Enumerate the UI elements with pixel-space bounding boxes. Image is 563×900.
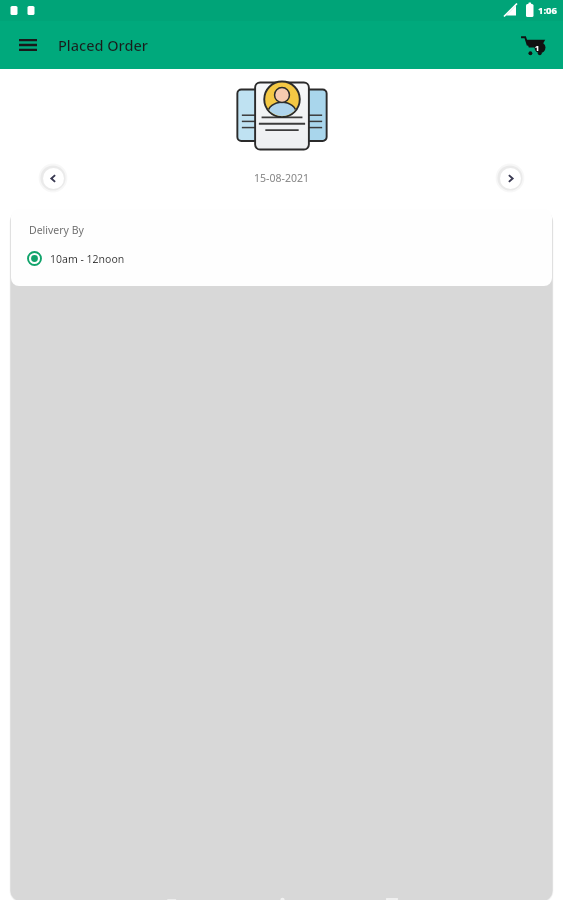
button[interactable]: Cart, 1 item [513,25,553,65]
button[interactable]: Open navigation menu [10,27,46,63]
staticText: Delivery By [29,223,84,237]
button[interactable]: 10am - 12noon [11,249,552,268]
staticText: Placed Order [58,35,148,55]
staticText: 10am - 12noon [50,252,125,266]
staticText: 1 [535,43,540,53]
button[interactable]: Previous day [43,168,64,189]
staticText: 1:06 [538,4,557,17]
staticText: 15-08-2021 [254,171,309,185]
button[interactable]: Next day [500,168,521,189]
